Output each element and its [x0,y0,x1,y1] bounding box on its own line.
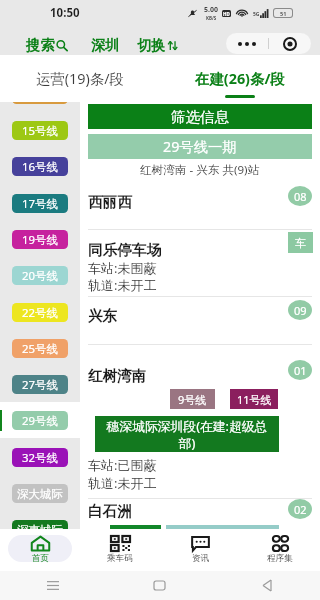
button[interactable]: 08 [288,186,312,206]
staticText: 轨道:未开工 [88,276,157,294]
staticText: 19号线 [22,232,58,248]
staticText: KB/S [206,15,217,21]
staticText: 9号线 [178,392,207,407]
button[interactable]: 资讯 [160,529,240,571]
button[interactable]: 16号线 [0,148,80,184]
button[interactable]: 切换 [137,36,178,54]
button[interactable]: 乘车码 [80,529,160,571]
staticText: 32号线 [22,450,58,466]
button[interactable]: 在建(26)条/段 [160,55,320,102]
staticText: 08 [294,189,307,204]
staticText: 深圳 [91,36,120,54]
button[interactable]: 02 [288,499,312,519]
staticText: 资讯 [192,553,210,564]
staticText: 20号线 [22,268,58,284]
button[interactable]: 01 [288,360,312,380]
staticText: 运营(19)条/段 [36,69,125,89]
staticText: HD [223,11,230,17]
staticText: 5G [253,11,260,18]
staticText: 红树湾南 - 兴东 共(9)站 [140,162,260,178]
button[interactable]: 11号线 [230,389,278,409]
button[interactable]: 19号线 [0,221,80,257]
button[interactable]: 深惠城际 [0,511,80,529]
button[interactable]: 14号线 [0,102,80,112]
staticText: 11号线 [237,392,272,407]
button[interactable]: 17号线 [0,185,80,221]
staticText: 穗深城际深圳段(在建:超级总部) [101,417,273,451]
staticText: 09 [294,303,307,318]
button[interactable]: Recents [0,571,106,600]
staticText: 5.00 [204,5,218,15]
staticText: 17号线 [22,196,58,212]
button[interactable]: 15号线 [0,112,80,148]
staticText: 27号线 [22,377,58,393]
button[interactable]: Home [106,571,213,600]
staticText: 深惠城际 [17,523,63,529]
button[interactable]: 西丽西 [88,193,132,211]
button[interactable]: 运营(19)条/段 [0,55,160,102]
button[interactable]: 22号线 [0,294,80,330]
button[interactable]: 穗深城际深圳段(在建:超级总部) [95,416,279,452]
staticText: 车站:已围蔽 [88,456,157,474]
button[interactable]: 首页 [0,529,80,571]
staticText: 车站:未围蔽 [88,259,157,277]
staticText: 15号线 [22,123,58,139]
button[interactable]: 29号线一期 [88,134,312,159]
button[interactable]: 白石洲 [88,502,132,520]
button[interactable]: 兴东 [88,307,118,325]
staticText: 10:50 [50,5,80,21]
staticText: 16号线 [22,159,58,175]
button[interactable]: 27号线 [0,366,80,402]
button[interactable]: 车 [288,232,313,253]
staticText: 29号线 [22,413,58,429]
staticText: 在建(26)条/段 [195,69,285,89]
button[interactable]: More [238,42,256,46]
staticText: 25号线 [22,341,58,357]
staticText: 29号线一期 [163,137,237,157]
button[interactable]: Back [213,571,320,600]
staticText: 搜索 [26,36,55,54]
staticText: 深大城际 [17,487,63,501]
button[interactable]: 深大城际 [0,475,80,511]
staticText: 02 [294,502,307,517]
button[interactable]: 同乐停车场 [88,241,161,259]
button[interactable]: 程序集 [240,529,320,571]
button[interactable]: 红树湾南 [88,367,147,385]
button[interactable]: 09 [288,300,312,320]
staticText: 51 [280,10,287,17]
staticText: 01 [294,363,307,378]
staticText: 程序集 [267,553,293,564]
button[interactable]: 深圳 [91,36,120,54]
button[interactable]: 9号线 [170,389,215,409]
button[interactable]: 搜索 [26,36,68,54]
staticText: 车 [295,236,306,250]
button[interactable]: 29号线 [0,402,80,438]
button[interactable]: Close [283,37,297,51]
button[interactable]: 20号线 [0,257,80,293]
button[interactable]: 32号线 [0,439,80,475]
staticText: 筛选信息 [171,108,229,126]
staticText: 切换 [137,36,166,54]
staticText: 首页 [32,553,50,564]
button[interactable]: 筛选信息 [88,104,312,129]
staticText: 轨道:未开工 [88,474,157,492]
staticText: 22号线 [22,305,58,321]
button[interactable]: 25号线 [0,330,80,366]
staticText: 乘车码 [107,553,133,564]
